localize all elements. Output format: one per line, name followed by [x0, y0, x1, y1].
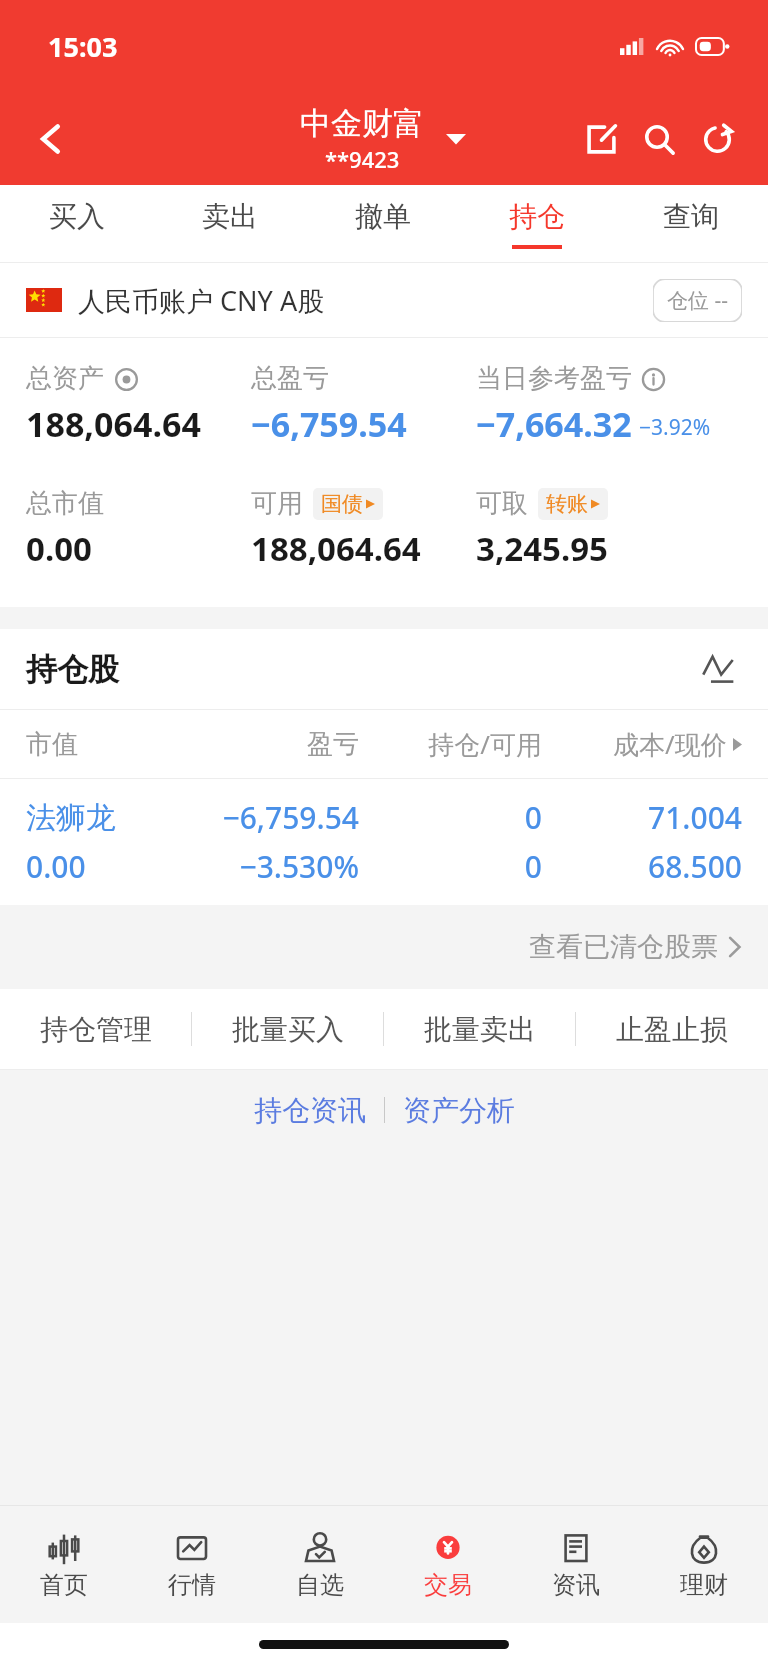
button[interactable]: 法狮龙: [0, 779, 768, 905]
button[interactable]: 首页: [0, 1505, 128, 1623]
staticText: 仓位 --: [667, 286, 728, 315]
staticText: 自选: [296, 1570, 344, 1600]
staticText: 71.004: [542, 797, 742, 838]
staticText: −6,759.54: [251, 401, 407, 447]
button[interactable]: Chart view: [694, 645, 742, 693]
staticText: −6,759.54: [192, 797, 359, 838]
staticText: 可取: [476, 487, 528, 520]
button[interactable]: Refresh: [688, 110, 746, 168]
button[interactable]: Share: [572, 110, 630, 168]
staticText: 盈亏: [192, 728, 359, 761]
staticText: −3.92%: [639, 413, 711, 442]
button[interactable]: 批量卖出: [384, 989, 576, 1069]
button[interactable]: 买入: [0, 185, 153, 263]
staticText: 当日参考盈亏: [476, 362, 632, 395]
staticText: 行情: [168, 1570, 216, 1600]
staticText: 人民币账户 CNY A股: [78, 282, 325, 319]
button[interactable]: 止盈止损: [576, 989, 768, 1069]
staticText: 0.00: [26, 526, 92, 571]
button[interactable]: 交易: [384, 1505, 512, 1623]
staticText: 188,064.64: [26, 401, 201, 447]
staticText: 68.500: [542, 846, 742, 887]
staticText: 持仓资讯: [254, 1093, 366, 1128]
button[interactable]: 仓位 --: [653, 279, 742, 322]
button[interactable]: 理财: [640, 1505, 768, 1623]
button[interactable]: 查询: [614, 185, 768, 263]
button[interactable]: 批量买入: [192, 989, 384, 1069]
staticText: 查看已清仓股票: [529, 930, 718, 964]
staticText: 持仓: [509, 199, 565, 234]
staticText: 买入: [49, 199, 105, 234]
staticText: 可用: [251, 487, 303, 520]
button[interactable]: Toggle visibility: [112, 365, 140, 393]
staticText: 止盈止损: [616, 1012, 728, 1047]
staticText: 资讯: [552, 1570, 600, 1600]
staticText: 中金财富: [300, 104, 424, 143]
staticText: 0: [359, 846, 542, 887]
button[interactable]: Switch account: [433, 116, 479, 162]
button[interactable]: 撤单: [306, 185, 460, 263]
button[interactable]: 持仓资讯: [236, 1083, 384, 1138]
staticText: 15:03: [48, 28, 118, 65]
staticText: 总市值: [26, 487, 104, 520]
staticText: 首页: [40, 1570, 88, 1600]
staticText: 总资产: [26, 362, 104, 395]
staticText: 总盈亏: [251, 362, 329, 395]
button[interactable]: 持仓管理: [0, 989, 192, 1069]
button[interactable]: 持仓: [460, 185, 614, 263]
button[interactable]: Back: [22, 110, 80, 168]
staticText: 0: [359, 797, 542, 838]
staticText: 撤单: [355, 199, 411, 234]
staticText: 资产分析: [403, 1093, 515, 1128]
staticText: 卖出: [202, 199, 258, 234]
button[interactable]: 转账: [538, 488, 608, 520]
staticText: 持仓股: [26, 650, 119, 689]
staticText: 法狮龙: [26, 799, 192, 837]
staticText: 0.00: [26, 846, 192, 887]
staticText: 转账: [546, 491, 588, 517]
staticText: 批量卖出: [424, 1012, 536, 1047]
button[interactable]: 资产分析: [385, 1083, 533, 1138]
button[interactable]: 卖出: [153, 185, 306, 263]
staticText: −3.530%: [192, 846, 359, 887]
button[interactable]: 行情: [128, 1505, 256, 1623]
staticText: −7,664.32: [476, 401, 632, 447]
staticText: 3,245.95: [476, 526, 608, 571]
staticText: 交易: [424, 1570, 472, 1600]
staticText: 批量买入: [232, 1012, 344, 1047]
button[interactable]: 国债: [313, 488, 383, 520]
staticText: 188,064.64: [251, 526, 421, 571]
button[interactable]: Search: [630, 110, 688, 168]
staticText: **9423: [325, 144, 400, 174]
staticText: 持仓/可用: [359, 726, 542, 762]
button[interactable]: 人民币账户 CNY A股: [0, 263, 768, 337]
staticText: 成本/现价: [613, 726, 727, 762]
button[interactable]: 自选: [256, 1505, 384, 1623]
button[interactable]: Info: [639, 365, 667, 393]
staticText: 查询: [663, 199, 719, 234]
staticText: 市值: [26, 728, 192, 761]
staticText: 理财: [680, 1570, 728, 1600]
button[interactable]: 查看已清仓股票: [0, 905, 768, 989]
staticText: 国债: [321, 491, 363, 517]
button[interactable]: 资讯: [512, 1505, 640, 1623]
staticText: 持仓管理: [40, 1012, 152, 1047]
